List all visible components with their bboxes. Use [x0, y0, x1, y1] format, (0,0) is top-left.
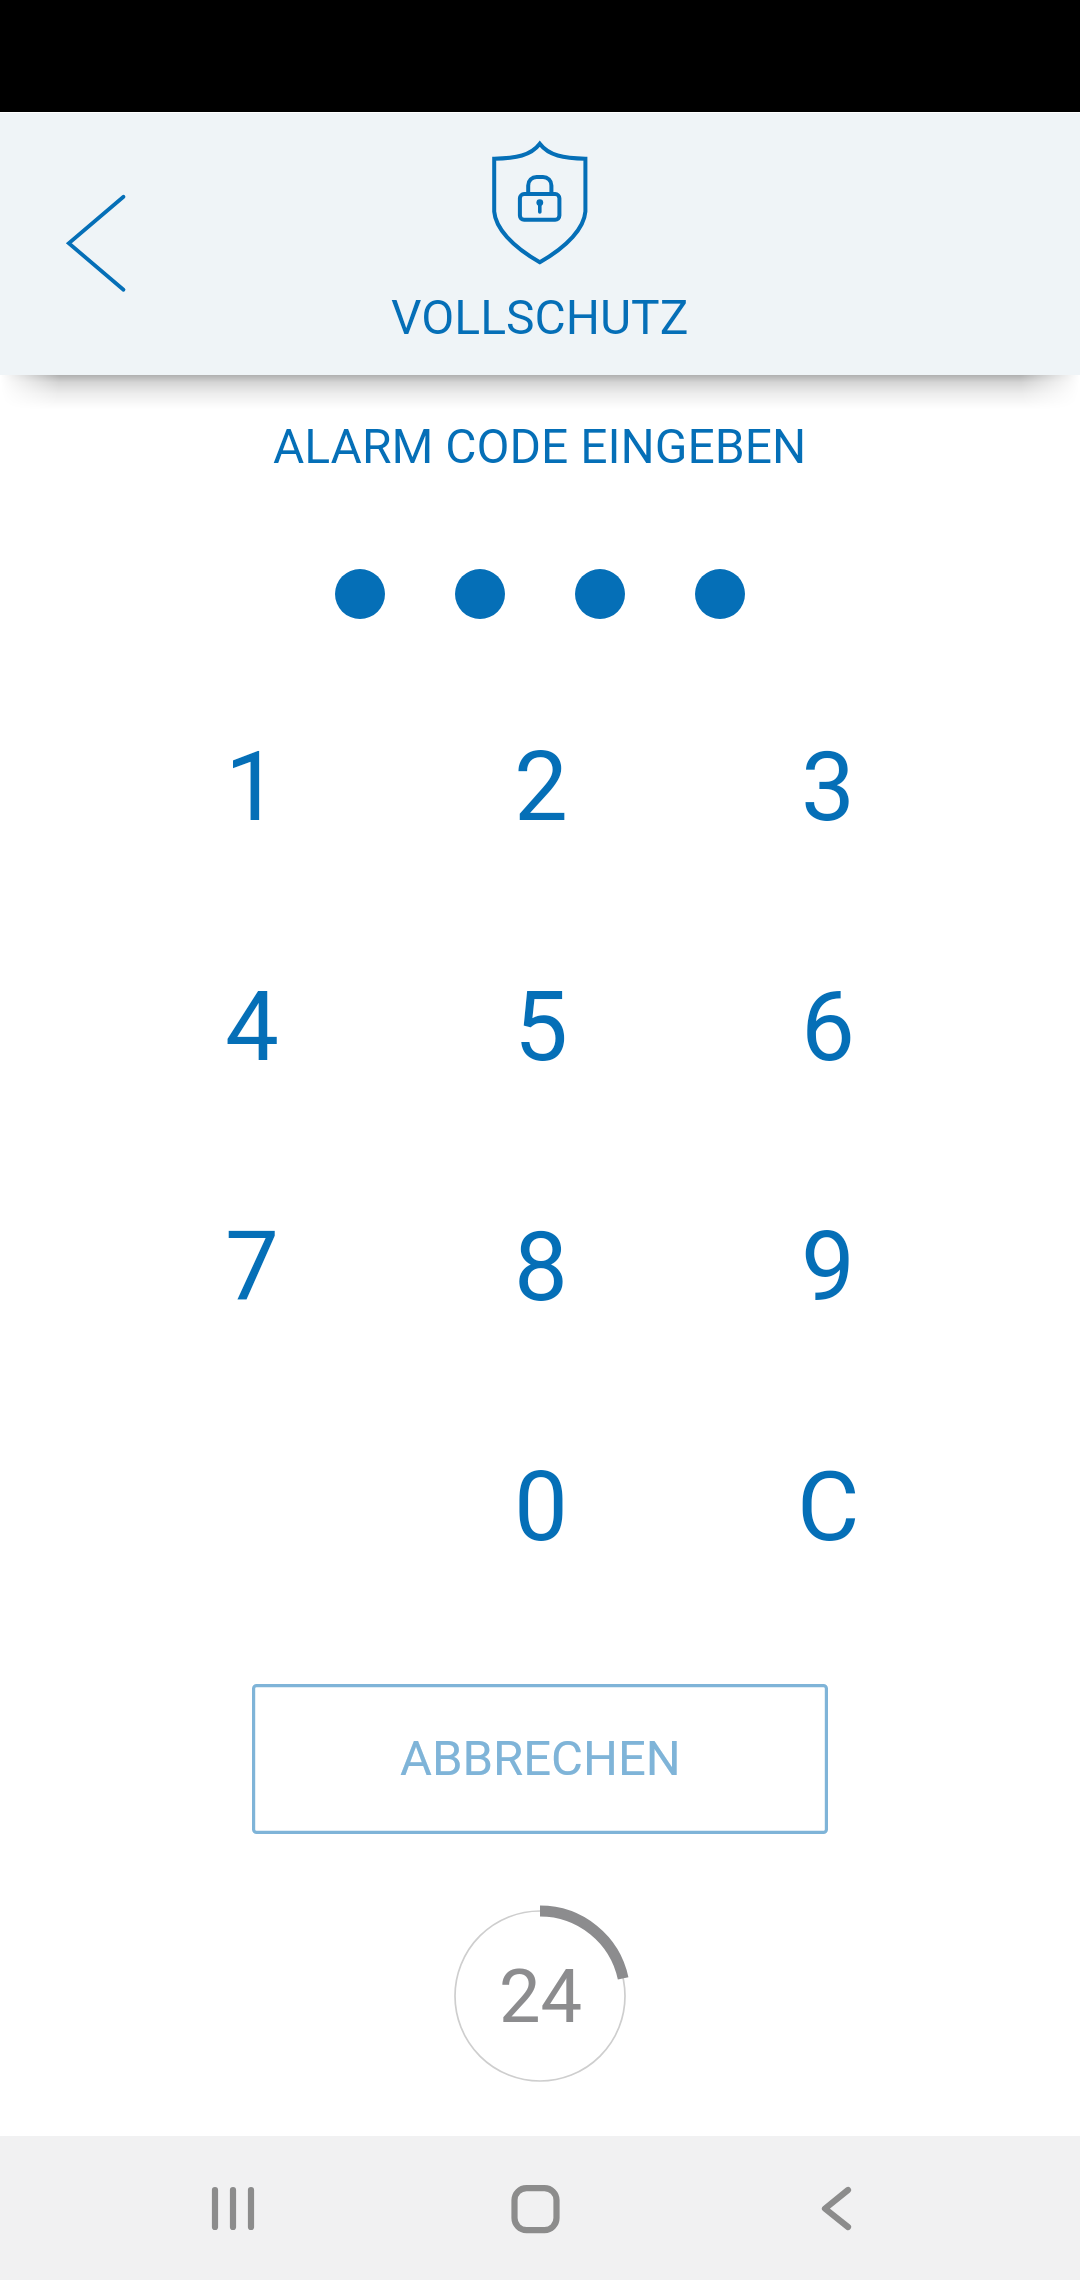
staticText: 9 [801, 1211, 855, 1324]
staticText: C [797, 1451, 860, 1564]
button[interactable]: 0 [421, 1397, 661, 1617]
button[interactable]: 7 [132, 1157, 372, 1377]
staticText: 5 [514, 971, 568, 1084]
button[interactable]: 4 [132, 917, 372, 1137]
staticText: 24 [499, 1953, 583, 2040]
button[interactable]: 3 [708, 677, 948, 897]
button[interactable]: Home [466, 2158, 606, 2258]
button[interactable]: 9 [708, 1157, 948, 1377]
button[interactable]: 2 [421, 677, 661, 897]
staticText: 3 [801, 731, 855, 844]
staticText: ABBRECHEN [400, 1730, 681, 1787]
staticText: 1 [225, 731, 279, 844]
button[interactable]: C [708, 1397, 948, 1617]
button[interactable]: 6 [708, 917, 948, 1137]
button[interactable]: Back [766, 2158, 906, 2258]
staticText: 7 [225, 1211, 279, 1324]
staticText: 0 [514, 1451, 568, 1564]
button[interactable]: 1 [132, 677, 372, 897]
staticText: 6 [801, 971, 855, 1084]
button[interactable]: 8 [421, 1157, 661, 1377]
button[interactable]: ABBRECHEN [252, 1684, 828, 1834]
staticText: VOLLSCHUTZ [391, 289, 689, 345]
button[interactable]: Back [20, 161, 170, 311]
staticText: 8 [514, 1211, 568, 1324]
button[interactable]: Recent apps [163, 2158, 303, 2258]
button[interactable]: 5 [421, 917, 661, 1137]
staticText: 2 [514, 731, 568, 844]
staticText: 4 [225, 971, 279, 1084]
staticText: ALARM CODE EINGEBEN [273, 418, 807, 474]
